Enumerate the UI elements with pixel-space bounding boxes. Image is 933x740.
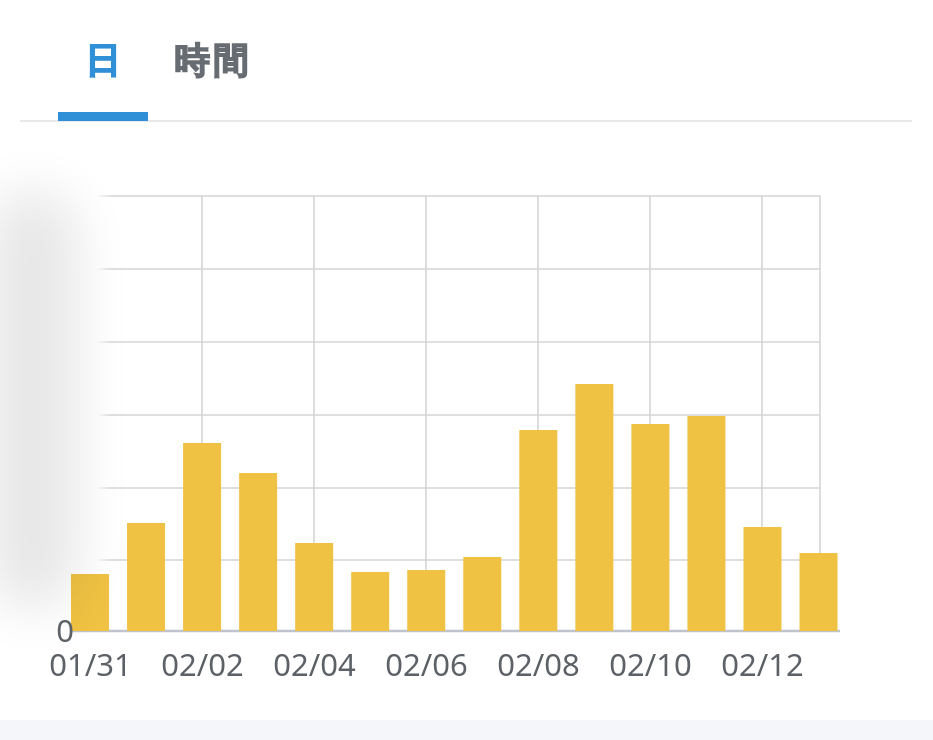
staticText: 01/31 bbox=[49, 643, 132, 683]
staticText: 日 bbox=[85, 39, 121, 84]
staticText: 02/10 bbox=[609, 643, 692, 683]
staticText: 02/12 bbox=[721, 643, 804, 683]
button[interactable]: 日 bbox=[0, 0, 148, 122]
staticText: 0 bbox=[56, 609, 74, 645]
staticText: 02/04 bbox=[273, 643, 356, 683]
staticText: 02/08 bbox=[497, 643, 580, 683]
staticText: 時間 bbox=[172, 39, 250, 84]
button[interactable]: 時間 bbox=[148, 0, 308, 122]
staticText: 02/02 bbox=[161, 643, 244, 683]
staticText: 02/06 bbox=[385, 643, 468, 683]
